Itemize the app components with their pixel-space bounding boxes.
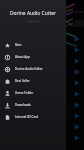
button[interactable] [0, 132, 84, 143]
staticText: Downloads [15, 103, 31, 107]
button[interactable]: Dorine Audio Editor [0, 63, 66, 75]
staticText: version 1.0 [27, 19, 40, 22]
staticText: Dorine Audio Cutter [10, 10, 56, 17]
staticText: Dorine Audio Editor [15, 67, 43, 71]
button[interactable] [0, 121, 84, 132]
staticText: About App [15, 55, 30, 59]
button[interactable] [0, 88, 84, 99]
button[interactable] [0, 44, 84, 55]
button[interactable] [0, 99, 84, 110]
staticText: Home Folder [15, 91, 34, 95]
button[interactable] [0, 33, 84, 44]
button[interactable]: Rate [0, 39, 66, 51]
staticText: Rate [15, 43, 22, 47]
button[interactable]: Downloads [0, 99, 66, 111]
button[interactable] [0, 77, 84, 88]
staticText: Best Seller [15, 79, 30, 83]
button[interactable]: Home Folder [0, 87, 66, 99]
button[interactable] [0, 55, 84, 66]
button[interactable] [0, 110, 84, 121]
button[interactable] [0, 66, 84, 77]
button[interactable]: About App [0, 51, 66, 63]
staticText: Internal SD Card [15, 115, 39, 119]
button[interactable]: Internal SD Card [0, 111, 66, 123]
button[interactable]: Best Seller [0, 75, 66, 87]
